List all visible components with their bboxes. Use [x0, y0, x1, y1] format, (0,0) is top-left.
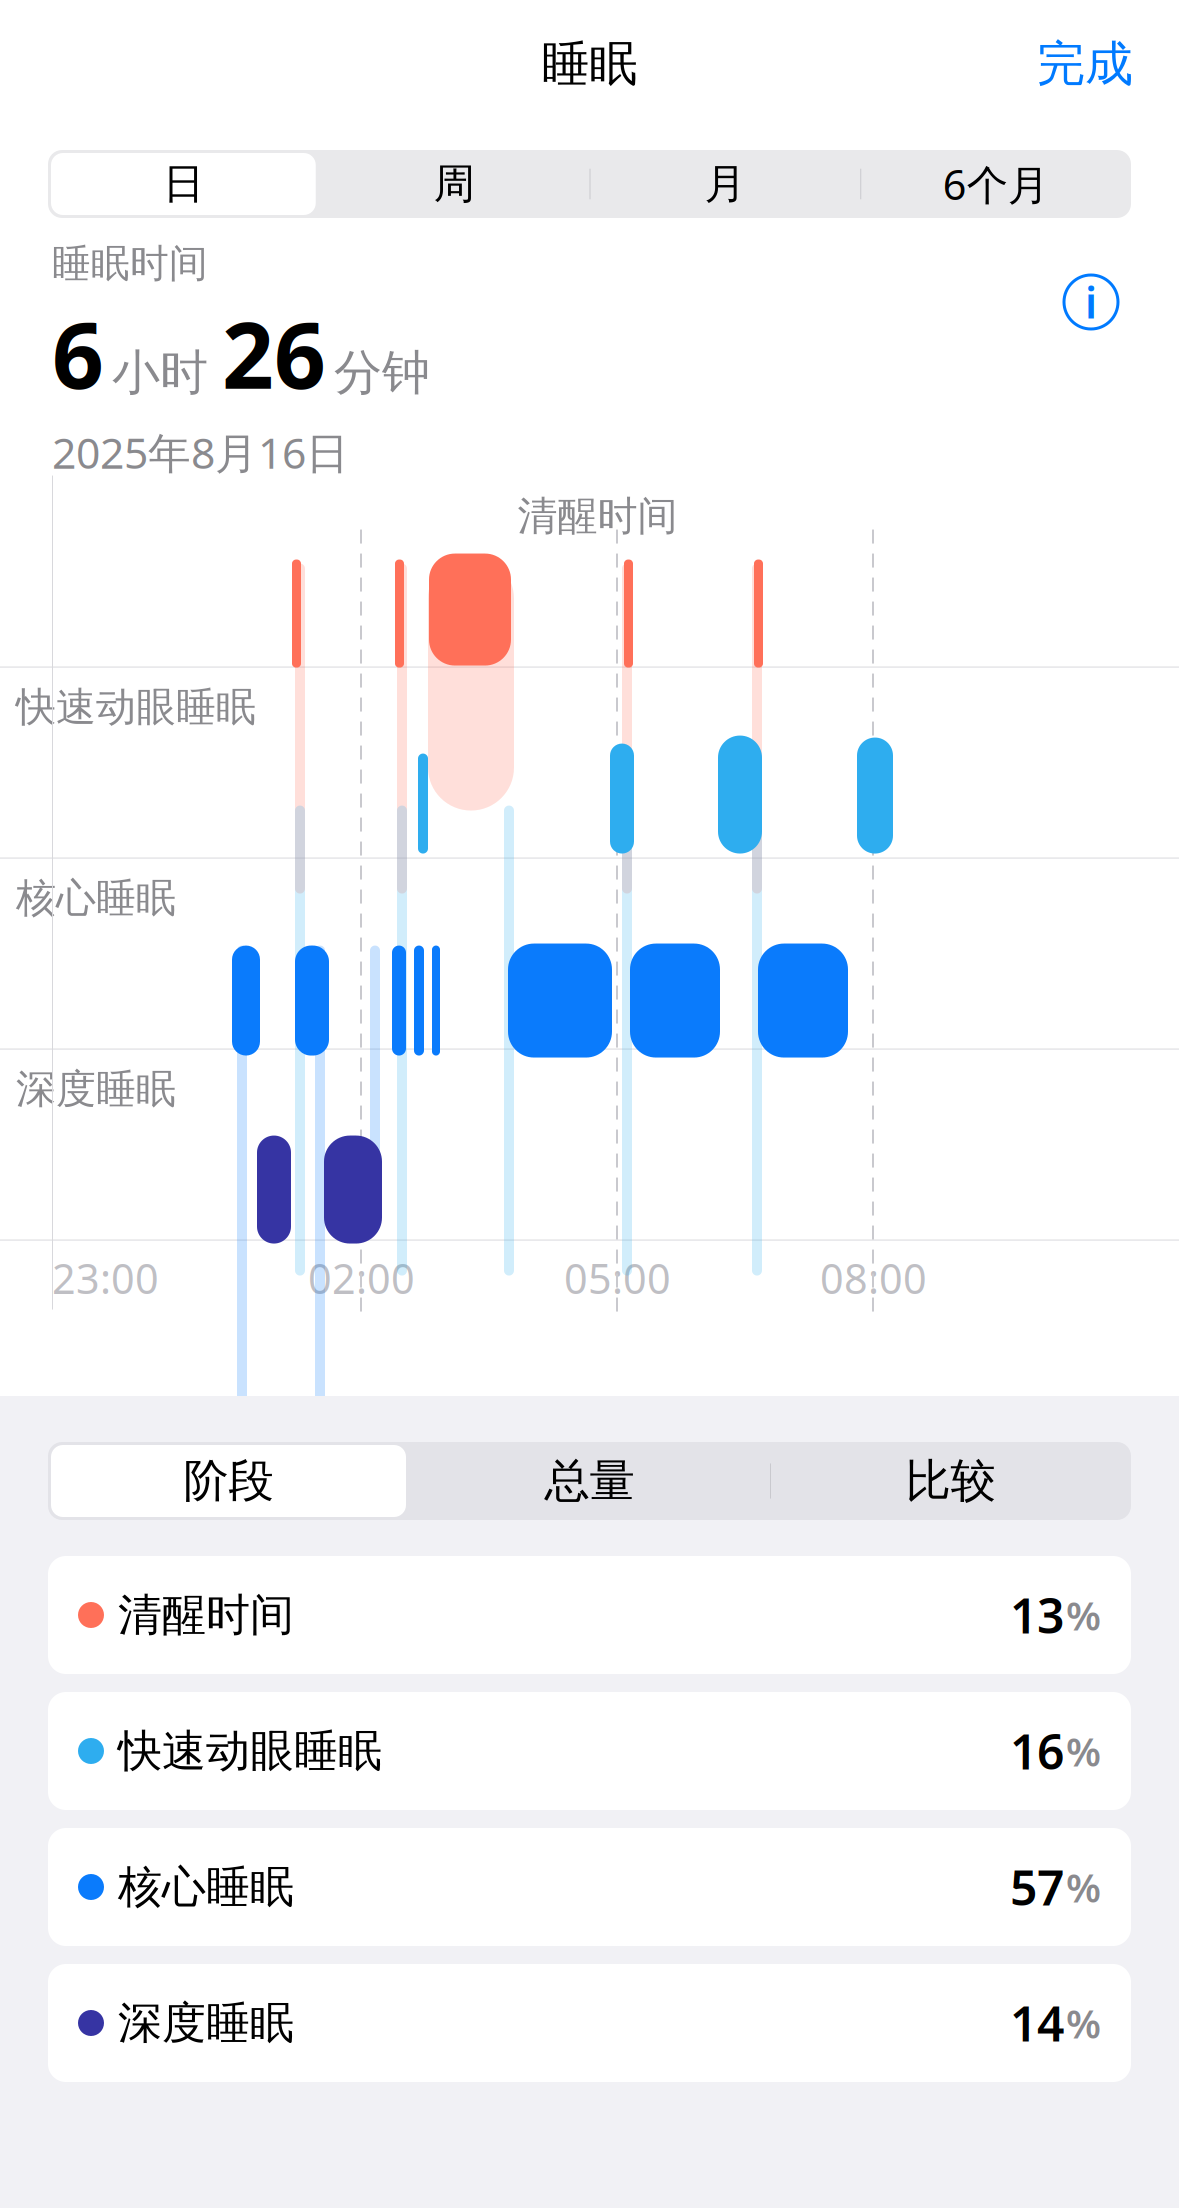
staticText: 深度睡眠	[118, 1996, 294, 2050]
staticText: %	[1066, 1724, 1101, 1777]
staticText: %	[1066, 1588, 1101, 1641]
staticText: 分钟	[334, 343, 430, 402]
button[interactable]: 关于睡眠时间	[1055, 266, 1127, 338]
staticText: 02:00	[308, 1251, 415, 1305]
staticText: %	[1066, 1860, 1101, 1913]
staticText: 深度睡眠	[16, 1065, 176, 1114]
staticText: 08:00	[820, 1251, 927, 1305]
staticText: 2025年8月16日	[52, 424, 349, 481]
staticText: 清醒时间	[118, 1588, 294, 1642]
button[interactable]: 周	[319, 150, 590, 218]
staticText: 16	[1010, 1719, 1064, 1783]
button[interactable]: 清醒时间	[48, 1556, 1131, 1674]
staticText: 05:00	[564, 1251, 671, 1305]
staticText: 小时	[112, 343, 208, 402]
staticText: 14	[1010, 1991, 1064, 2055]
staticText: 月	[704, 159, 745, 209]
button[interactable]: 快速动眼睡眠	[48, 1692, 1131, 1810]
staticText: %	[1066, 1996, 1101, 2049]
button[interactable]: 完成	[1027, 28, 1143, 99]
staticText: 6	[52, 293, 104, 414]
staticText: 总量	[544, 1453, 634, 1509]
staticText: 核心睡眠	[16, 874, 176, 923]
staticText: 23:00	[52, 1251, 159, 1305]
staticText: 核心睡眠	[118, 1860, 294, 1914]
staticText: 完成	[1037, 34, 1133, 93]
button[interactable]: 核心睡眠	[48, 1828, 1131, 1946]
staticText: 周	[434, 159, 475, 209]
staticText: 13	[1010, 1583, 1064, 1647]
staticText: 57	[1010, 1855, 1064, 1919]
staticText: 日	[163, 159, 204, 209]
staticText: i	[1085, 274, 1097, 330]
staticText: 6个月	[943, 157, 1049, 211]
staticText: 快速动眼睡眠	[118, 1724, 382, 1778]
button[interactable]: 月	[589, 150, 860, 218]
button[interactable]: 深度睡眠	[48, 1964, 1131, 2082]
button[interactable]: 比较	[770, 1442, 1131, 1520]
staticText: 26	[222, 293, 326, 414]
staticText: 阶段	[183, 1453, 273, 1509]
button[interactable]: 日	[48, 150, 319, 218]
button[interactable]: 总量	[409, 1442, 770, 1520]
staticText: 比较	[905, 1453, 995, 1509]
staticText: 清醒时间	[517, 492, 677, 541]
button[interactable]: 阶段	[48, 1442, 409, 1520]
button[interactable]: 6个月	[860, 150, 1131, 218]
staticText: 睡眠时间	[52, 240, 208, 287]
staticText: 快速动眼睡眠	[16, 683, 256, 732]
staticText: 睡眠	[541, 34, 637, 93]
